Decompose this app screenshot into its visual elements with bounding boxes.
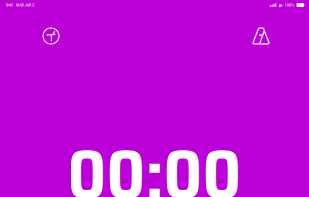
staticText: 00:00 (67, 120, 241, 197)
button[interactable]: Tuner (38, 24, 64, 48)
staticText: 100% (285, 3, 295, 7)
staticText: 9:41 (6, 3, 13, 7)
button[interactable]: Metronome (248, 24, 274, 48)
staticText: Mon Jun 2 (13, 3, 34, 7)
